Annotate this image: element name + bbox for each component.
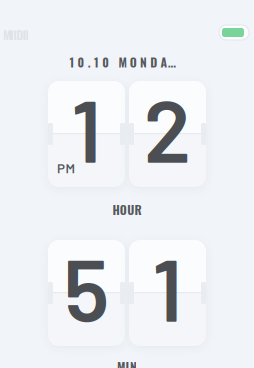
staticText: PM — [57, 160, 75, 176]
staticText: 10.10 MONDAY — [69, 53, 176, 71]
staticText: HOUR — [112, 201, 142, 218]
staticText: MIN — [117, 358, 137, 368]
staticText: 2 — [143, 76, 191, 180]
staticText: 5 — [63, 235, 109, 339]
button[interactable]: Battery — [219, 25, 249, 40]
staticText: 1 — [152, 235, 183, 339]
staticText: 1 — [71, 76, 102, 180]
staticText: MIIDII — [3, 26, 29, 44]
